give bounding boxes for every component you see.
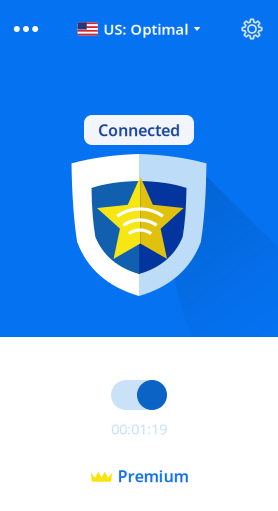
staticText: Premium (117, 465, 188, 487)
button[interactable]: Disconnect (84, 378, 194, 440)
button[interactable]: US: Optimal (78, 9, 200, 49)
button[interactable]: Connected (84, 115, 194, 145)
staticText: 00:01:19 (111, 419, 167, 438)
button[interactable]: Premium (89, 459, 188, 493)
staticText: Connected (98, 119, 180, 141)
button[interactable]: Menu (3, 9, 49, 49)
staticText: US: Optimal (103, 19, 188, 39)
button[interactable]: Settings (229, 9, 275, 49)
